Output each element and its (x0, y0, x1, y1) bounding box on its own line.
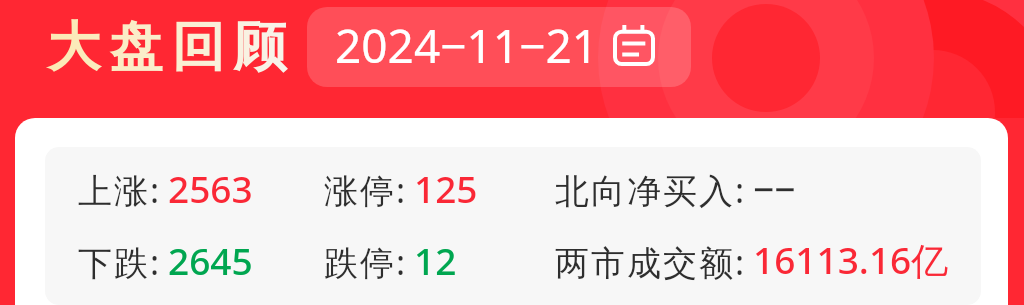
staticText: 2645 (168, 235, 253, 285)
staticText: 125 (414, 163, 478, 213)
staticText: 下跌: (78, 239, 162, 285)
staticText: 2024−11−21 (335, 14, 599, 77)
staticText: −− (753, 163, 796, 213)
other: Pick date (613, 25, 655, 66)
staticText: 大盘回顾 (43, 14, 291, 81)
staticText: 上涨: (78, 167, 162, 213)
button[interactable]: 2024−11−21 (307, 7, 691, 87)
staticText: 12 (414, 235, 457, 285)
staticText: 涨停: (324, 167, 408, 213)
staticText: 跌停: (324, 239, 408, 285)
staticText: 2563 (168, 163, 253, 213)
staticText: 两市成交额: (555, 239, 747, 285)
staticText: 16113.16亿 (753, 234, 949, 285)
staticText: 北向净买入: (555, 167, 747, 213)
